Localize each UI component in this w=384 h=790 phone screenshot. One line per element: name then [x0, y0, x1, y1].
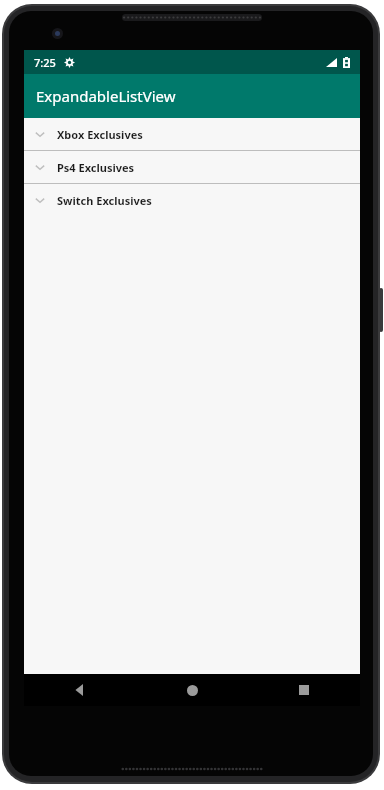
staticText: Ps4 Exclusives — [57, 160, 135, 175]
staticText: 7:25 — [34, 55, 56, 70]
button[interactable]: Xbox Exclusives — [24, 118, 360, 150]
button[interactable]: Home — [136, 674, 248, 706]
staticText: Xbox Exclusives — [57, 127, 143, 142]
button[interactable]: Recent apps — [248, 674, 360, 706]
button[interactable]: Back — [24, 674, 136, 706]
staticText: Switch Exclusives — [57, 193, 152, 208]
button[interactable]: Switch Exclusives — [24, 184, 360, 216]
staticText: ExpandableListView — [36, 86, 176, 106]
button[interactable]: Ps4 Exclusives — [24, 151, 360, 183]
